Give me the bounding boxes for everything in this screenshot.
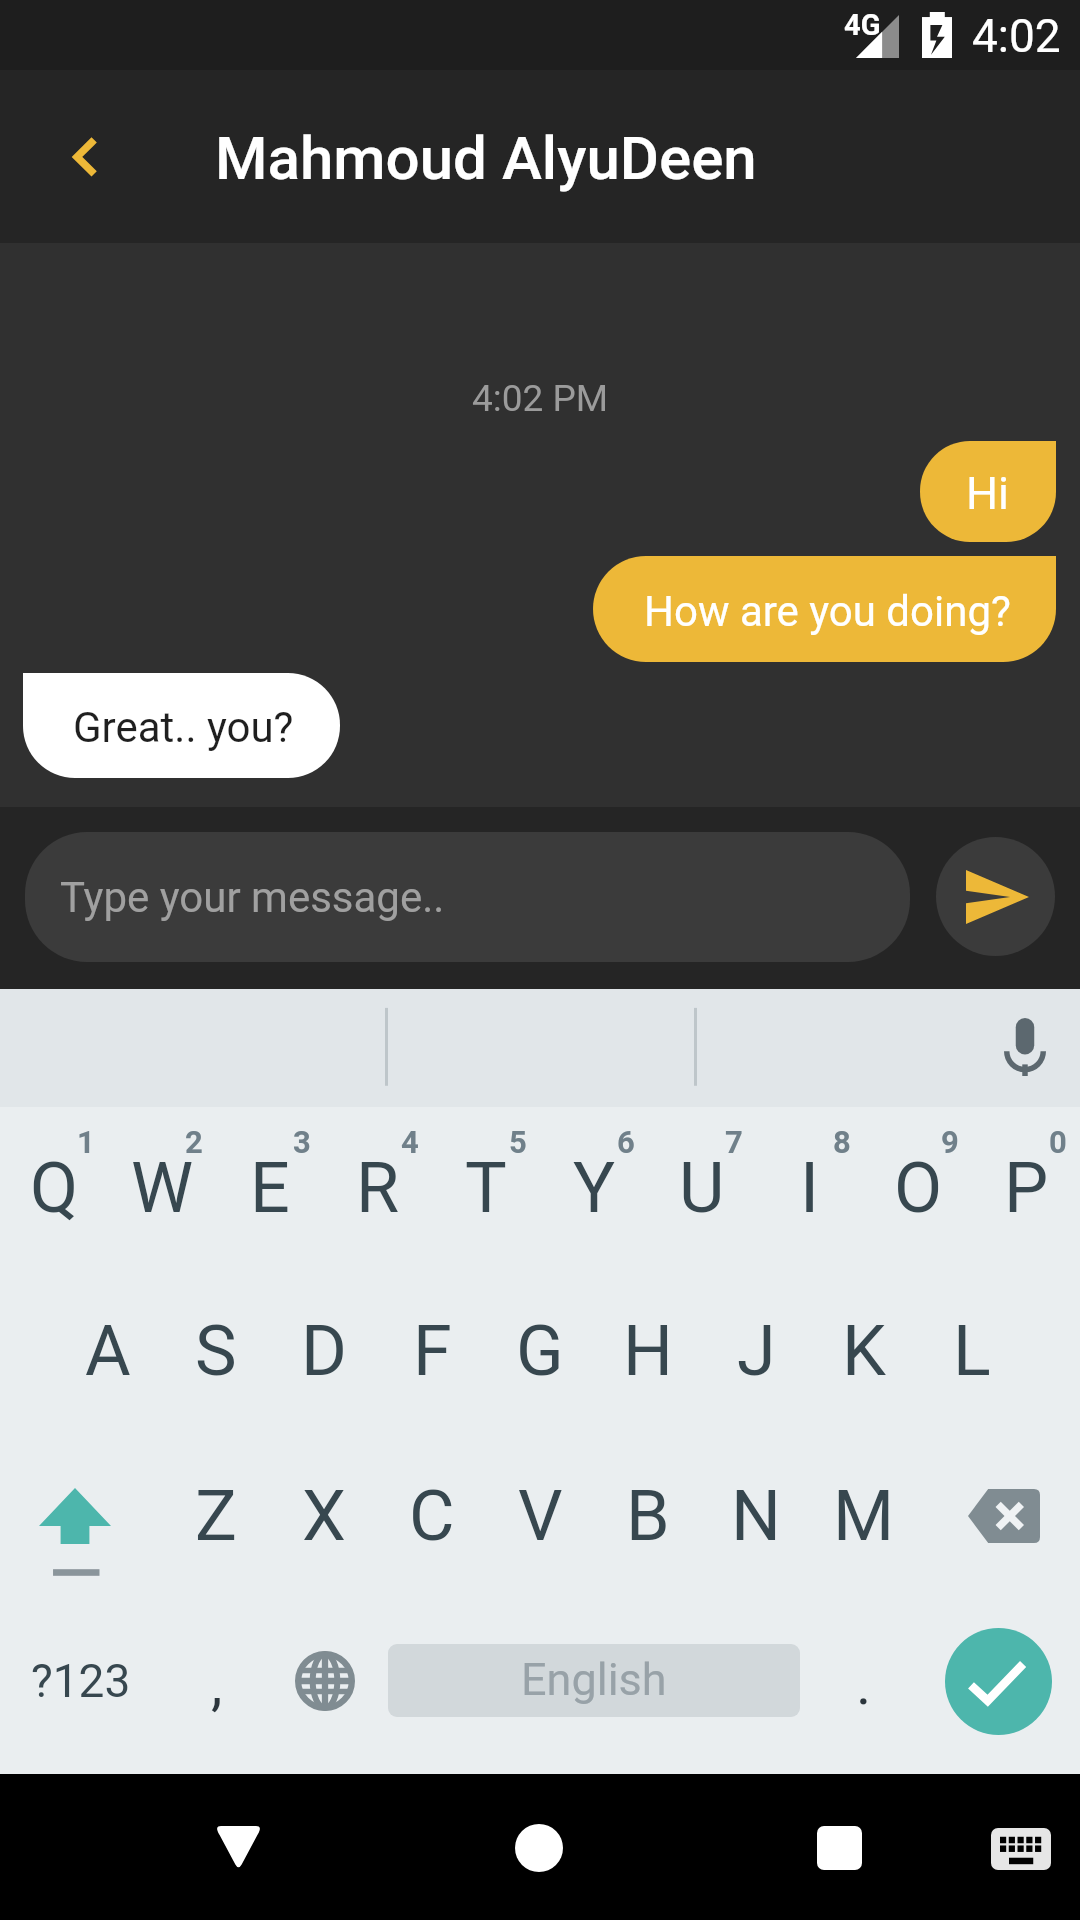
button[interactable]: L <box>918 1269 1026 1433</box>
staticText: O <box>894 1147 943 1229</box>
button[interactable]: Great.. you? <box>23 673 340 778</box>
button[interactable]: Q <box>0 1106 108 1270</box>
staticText: 7 <box>725 1124 743 1160</box>
staticText: V <box>518 1475 563 1557</box>
staticText: Hi <box>966 467 1010 520</box>
button[interactable]: D <box>270 1269 378 1433</box>
staticText: 6 <box>617 1124 635 1160</box>
button[interactable]: Hi <box>920 441 1056 542</box>
staticText: 1 <box>77 1124 95 1160</box>
staticText: G <box>516 1310 564 1392</box>
button[interactable]: V <box>486 1434 594 1598</box>
button[interactable]: M <box>810 1434 918 1598</box>
staticText: 4:02 PM <box>0 377 1080 420</box>
button[interactable]: J <box>702 1269 810 1433</box>
button[interactable]: C <box>378 1434 486 1598</box>
button[interactable]: Recents <box>770 1774 910 1920</box>
button[interactable]: G <box>486 1269 594 1433</box>
button[interactable]: X <box>270 1434 378 1598</box>
button[interactable]: ?123 <box>11 1599 151 1763</box>
staticText: M <box>833 1475 895 1557</box>
button[interactable]: Send <box>936 837 1055 956</box>
staticText: S <box>195 1310 237 1392</box>
staticText: . <box>856 1650 872 1718</box>
button[interactable]: Voice input <box>980 1003 1070 1093</box>
button[interactable]: Back <box>169 1774 309 1920</box>
staticText: Type your message.. <box>60 873 445 922</box>
staticText: 9 <box>941 1124 959 1160</box>
button[interactable]: Hide keyboard <box>950 1774 1080 1920</box>
staticText: P <box>1004 1147 1049 1229</box>
staticText: 3 <box>293 1124 311 1160</box>
staticText: J <box>737 1310 776 1392</box>
staticText: X <box>302 1475 346 1557</box>
button[interactable]: O <box>864 1106 972 1270</box>
staticText: English <box>521 1653 667 1706</box>
staticText: I <box>800 1147 820 1229</box>
staticText: U <box>679 1147 725 1229</box>
staticText: Q <box>30 1147 79 1229</box>
staticText: 4:02 <box>972 9 1061 63</box>
staticText: A <box>85 1310 131 1392</box>
button[interactable]: Type your message.. <box>25 832 910 962</box>
button[interactable]: English <box>388 1644 800 1717</box>
button[interactable]: K <box>810 1269 918 1433</box>
staticText: H <box>623 1310 673 1392</box>
staticText: B <box>626 1475 670 1557</box>
staticText: E <box>250 1147 290 1229</box>
button[interactable]: P <box>972 1106 1080 1270</box>
staticText: C <box>409 1475 455 1557</box>
staticText: How are you doing? <box>644 587 1011 636</box>
staticText: 8 <box>833 1124 851 1160</box>
staticText: , <box>211 1650 223 1718</box>
button[interactable]: Y <box>540 1106 648 1270</box>
staticText: Mahmoud AlyuDeen <box>215 123 757 193</box>
button[interactable]: I <box>756 1106 864 1270</box>
staticText: L <box>953 1310 991 1392</box>
staticText: Z <box>195 1475 237 1557</box>
staticText: 0 <box>1049 1124 1067 1160</box>
button[interactable]: Back <box>18 101 128 211</box>
button[interactable]: Z <box>162 1434 270 1598</box>
button[interactable]: N <box>702 1434 810 1598</box>
staticText: W <box>131 1147 194 1229</box>
button[interactable]: B <box>594 1434 702 1598</box>
staticText: T <box>465 1147 507 1229</box>
button[interactable]: How are you doing? <box>593 556 1056 662</box>
staticText: D <box>301 1310 347 1392</box>
button[interactable]: H <box>594 1269 702 1433</box>
staticText: 4G <box>844 8 881 42</box>
button[interactable]: F <box>378 1269 486 1433</box>
staticText: ?123 <box>31 1654 131 1708</box>
button[interactable]: Change language <box>270 1599 380 1763</box>
staticText: Great.. you? <box>73 703 294 752</box>
staticText: 5 <box>509 1124 527 1160</box>
button[interactable]: W <box>108 1106 216 1270</box>
button[interactable]: S <box>162 1269 270 1433</box>
button[interactable]: A <box>54 1269 162 1433</box>
button[interactable]: , <box>161 1599 271 1763</box>
button[interactable]: R <box>324 1106 432 1270</box>
staticText: F <box>413 1310 452 1392</box>
button[interactable]: T <box>432 1106 540 1270</box>
button[interactable]: Shift <box>8 1434 148 1598</box>
staticText: Y <box>573 1147 616 1229</box>
staticText: 2 <box>185 1124 203 1160</box>
staticText: N <box>731 1475 781 1557</box>
button[interactable]: Enter <box>945 1628 1052 1735</box>
button[interactable]: Backspace <box>934 1434 1074 1598</box>
button[interactable]: U <box>648 1106 756 1270</box>
staticText: K <box>842 1310 886 1392</box>
staticText: R <box>356 1147 400 1229</box>
staticText: 4 <box>401 1124 419 1160</box>
button[interactable]: . <box>808 1599 918 1763</box>
button[interactable]: Home <box>469 1774 609 1920</box>
button[interactable]: E <box>216 1106 324 1270</box>
